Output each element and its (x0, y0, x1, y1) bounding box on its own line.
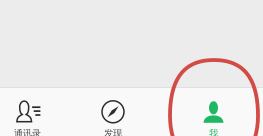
button[interactable]: 发现 (74, 99, 152, 136)
button[interactable]: 通讯录 (0, 99, 66, 136)
button[interactable]: 我 (174, 99, 252, 136)
staticText: 我 (209, 128, 218, 136)
staticText: 通讯录 (14, 128, 41, 136)
staticText: 发现 (104, 128, 122, 136)
